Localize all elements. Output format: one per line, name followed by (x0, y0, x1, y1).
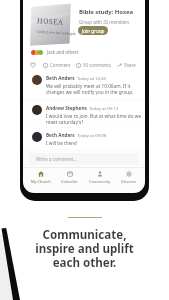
staticText: Share (124, 62, 136, 68)
staticText: Write a comment... (36, 156, 77, 162)
staticText: Bible study: Hosea (79, 8, 134, 16)
button[interactable]: Community (87, 170, 113, 185)
staticText: Join group (82, 28, 105, 34)
staticText: Community (89, 179, 111, 184)
staticText: Communicate, inspire and uplift each oth… (35, 227, 134, 270)
button[interactable]: Beth Anders (23, 128, 145, 149)
button[interactable]: Share (117, 62, 136, 68)
button[interactable]: Discover (119, 170, 139, 185)
staticText: Beth Anders (46, 132, 75, 138)
staticText: I will be there! (46, 140, 78, 146)
staticText: 50 comments (83, 62, 112, 68)
staticText: Calendar (61, 179, 78, 184)
staticText: Today at 12:43 (77, 75, 107, 81)
staticText: I would love to join. But at what time d… (46, 113, 142, 125)
staticText: God's Love for a People (37, 29, 76, 36)
staticText: Beth Anders (46, 75, 75, 81)
staticText: HOSEA (37, 15, 64, 27)
staticText: Discover (121, 179, 137, 184)
staticText: We will probably meet at 10:00am. If it … (46, 83, 134, 95)
button[interactable]: Join group (78, 26, 108, 35)
staticText: Comment (50, 62, 71, 68)
staticText: Jack and others (47, 49, 79, 55)
staticText: Group with 32 members (79, 19, 130, 25)
button[interactable]: My Church (29, 170, 53, 185)
button[interactable]: Comment (43, 62, 71, 68)
staticText: My Church (31, 179, 51, 184)
button[interactable]: Beth Anders (23, 71, 145, 98)
button[interactable]: Andrew Stephens (23, 101, 145, 127)
button[interactable]: Calendar (59, 170, 80, 185)
button[interactable]: 50 comments (76, 62, 112, 68)
staticText: Today at 09:08 (77, 132, 107, 138)
button[interactable]: Write a comment... (29, 153, 138, 165)
staticText: Today at 09:12 (89, 105, 119, 111)
staticText: Andrew Stephens (46, 105, 87, 111)
button[interactable]: Like (30, 62, 36, 68)
